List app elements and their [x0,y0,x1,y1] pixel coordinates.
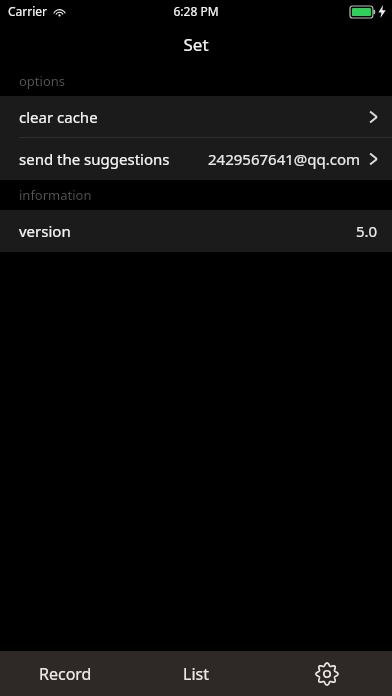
button[interactable]: clear cache [0,96,392,138]
button[interactable]: version [0,210,392,252]
staticText: clear cache [19,107,98,127]
staticText: options [19,72,66,90]
button[interactable]: List [130,651,261,696]
staticText: List [183,663,209,685]
staticText: version [19,221,71,241]
staticText: 5.0 [356,221,378,241]
button[interactable]: send the suggestions [0,138,392,180]
staticText: Set [183,33,209,56]
staticText: 2429567641@qq.com [208,149,361,169]
button[interactable]: Record [0,651,130,696]
staticText: information [19,186,92,204]
button[interactable]: Settings [261,651,392,696]
staticText: send the suggestions [19,149,170,169]
staticText: 6:28 PM [173,3,219,19]
staticText: Carrier [8,3,48,19]
staticText: Record [39,663,92,685]
